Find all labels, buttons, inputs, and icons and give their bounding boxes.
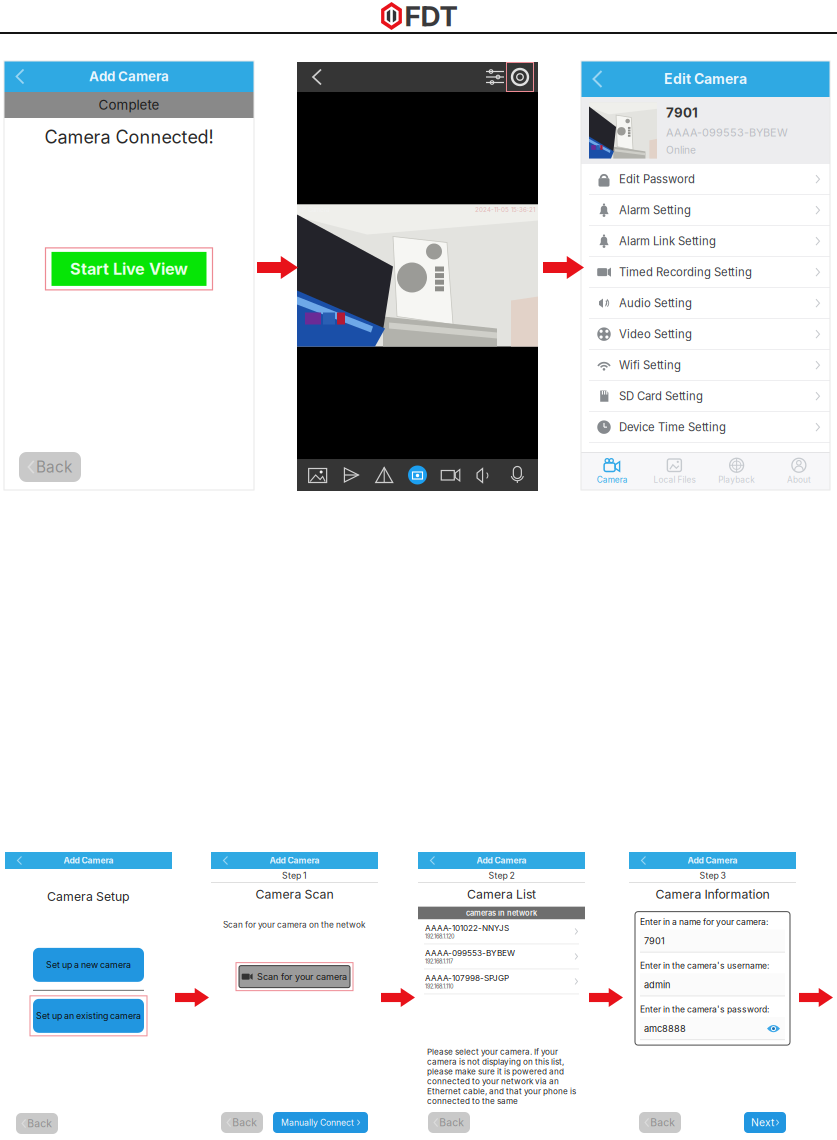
button[interactable]: Timed Recording Setting	[581, 257, 830, 288]
button[interactable]: AAAA-099553-BYBEW	[418, 944, 585, 969]
staticText: Add Camera	[89, 68, 169, 84]
staticText: Manually Connect	[281, 1117, 354, 1128]
button[interactable]: Back	[9, 852, 30, 869]
button[interactable]: Video Setting	[581, 319, 830, 350]
staticText: Back	[27, 1117, 52, 1130]
staticText: Device Time Setting	[619, 420, 726, 434]
staticText: Scan for your camera	[257, 971, 347, 982]
button[interactable]: About	[768, 452, 830, 490]
staticText: Scan for your camera on the netwok	[223, 920, 366, 930]
staticText: Back	[232, 1116, 257, 1129]
button[interactable]: Back	[585, 61, 610, 97]
staticText: 192.168.1.110	[425, 983, 454, 990]
button[interactable]: Speaker	[467, 464, 501, 485]
button[interactable]: Microphone	[501, 464, 534, 485]
staticText: Start Live View	[70, 259, 188, 279]
staticText: Timed Recording Setting	[619, 265, 752, 279]
button[interactable]: Set up a new camera	[33, 948, 144, 982]
staticText: 2024-11-05 15:36:21	[475, 206, 535, 213]
staticText: Camera Connected!	[44, 126, 213, 148]
button[interactable]: Edit Password	[581, 164, 830, 195]
staticText: Video Setting	[619, 327, 692, 341]
button[interactable]: Back	[639, 1112, 681, 1133]
button[interactable]: Start Live View	[51, 252, 206, 286]
staticText: Add Camera	[269, 855, 319, 866]
staticText: AAAA-107998-SPJGP	[425, 973, 509, 983]
staticText: Online	[666, 144, 696, 156]
button[interactable]: Back	[633, 852, 654, 869]
staticText: Camera Scan	[255, 887, 333, 902]
staticText: Alarm Setting	[619, 203, 691, 217]
button[interactable]: Back	[221, 1112, 263, 1133]
button[interactable]: Back	[215, 852, 236, 869]
button[interactable]: Audio Setting	[581, 288, 830, 319]
staticText: Local Files	[653, 475, 695, 485]
button[interactable]: Playback	[705, 452, 768, 490]
button[interactable]: Back	[16, 1113, 58, 1134]
button[interactable]: Mirror	[368, 464, 401, 485]
button[interactable]: Snapshot	[301, 464, 334, 485]
staticText: Add Camera	[476, 855, 526, 866]
staticText: Step 1	[282, 870, 307, 881]
staticText: 192.168.1.120	[425, 933, 455, 940]
button[interactable]: Device Time Setting	[581, 412, 830, 443]
staticText: Step 3	[699, 870, 725, 881]
staticText: Next	[751, 1116, 774, 1129]
staticText: Enter in the camera's password:	[640, 1004, 769, 1015]
button[interactable]: Back	[8, 61, 32, 92]
staticText: Back	[439, 1116, 464, 1129]
button[interactable]: Record video	[434, 464, 467, 485]
button[interactable]: Scan for your camera	[239, 966, 350, 988]
staticText: SD Card Setting	[619, 389, 703, 403]
staticText: Audio Setting	[619, 296, 692, 310]
staticText: Please select your camera. If your camer…	[427, 1047, 576, 1106]
staticText: cameras in network	[466, 908, 537, 917]
staticText: Camera List	[467, 887, 536, 902]
staticText: Back	[650, 1116, 675, 1129]
staticText: Enter in a name for your camera:	[640, 917, 768, 927]
staticText: AAAA-099553-BYBEW	[425, 948, 515, 958]
staticText: amc8888	[644, 1023, 686, 1034]
button[interactable]: Local Files	[643, 452, 705, 490]
staticText: FDT	[404, 0, 457, 33]
button[interactable]: Adjust image	[483, 62, 507, 92]
staticText: Camera	[597, 475, 628, 485]
staticText: 7901	[666, 105, 698, 121]
button[interactable]: Back	[302, 62, 332, 92]
button[interactable]: AAAA-101022-NNYJS	[418, 919, 585, 944]
staticText: Set up an existing camera	[36, 1010, 141, 1021]
button[interactable]: Next	[744, 1112, 786, 1133]
button[interactable]: Alarm Link Setting	[581, 226, 830, 257]
staticText: Add Camera	[687, 855, 737, 866]
button[interactable]: Wifi Setting	[581, 350, 830, 381]
button[interactable]: SD Card Setting	[581, 381, 830, 412]
button[interactable]: Capture photo	[401, 464, 434, 485]
staticText: Complete	[98, 97, 159, 113]
staticText: Add Camera	[63, 855, 113, 866]
staticText: Edit Password	[619, 172, 695, 186]
staticText: Set up a new camera	[46, 959, 131, 970]
button[interactable]: AAAA-107998-SPJGP	[418, 969, 585, 994]
staticText: AAAA-099553-BYBEW	[666, 126, 788, 139]
staticText: Enter in the camera's username:	[640, 960, 769, 971]
button[interactable]: Alarm Setting	[581, 195, 830, 226]
button[interactable]: Settings	[507, 63, 533, 91]
button[interactable]: Manually Connect	[273, 1112, 368, 1133]
staticText: Alarm Link Setting	[619, 234, 716, 248]
staticText: admin	[644, 979, 670, 990]
button[interactable]: Back	[19, 452, 81, 482]
staticText: Back	[36, 458, 72, 476]
staticText: About	[787, 475, 811, 485]
button[interactable]: Back	[422, 852, 443, 869]
staticText: 192.168.1.117	[425, 958, 453, 965]
button[interactable]: Show password	[766, 1022, 781, 1035]
button[interactable]: Back	[428, 1112, 470, 1133]
staticText: 7901	[644, 935, 665, 946]
button[interactable]: Camera	[581, 452, 643, 490]
button[interactable]: Set up an existing camera	[33, 999, 144, 1033]
staticText: Camera Setup	[47, 889, 130, 904]
button[interactable]: Stream	[334, 464, 368, 485]
staticText: Camera Information	[655, 887, 769, 902]
staticText: Playback	[718, 475, 755, 485]
